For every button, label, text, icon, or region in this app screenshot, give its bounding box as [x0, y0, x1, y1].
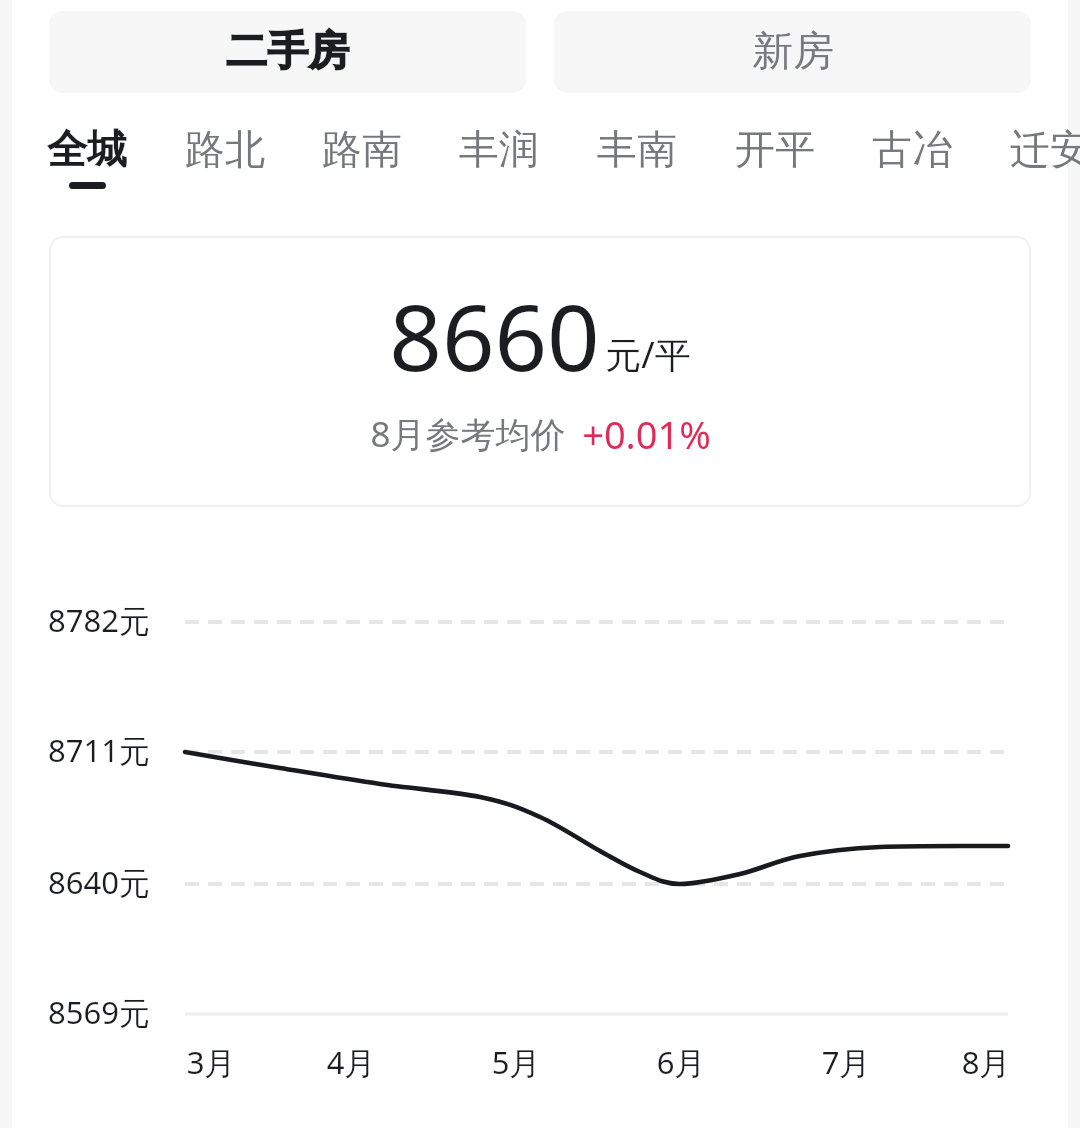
staticText: 8711元: [48, 729, 150, 771]
staticText: 5月: [456, 1041, 576, 1083]
staticText: 全城: [17, 124, 157, 174]
staticText: 6月: [621, 1041, 741, 1083]
staticText: 丰南: [567, 124, 707, 174]
staticText: 8月参考均价: [370, 410, 566, 458]
staticText: 3月: [151, 1041, 271, 1083]
button[interactable]: 迁安: [980, 110, 1080, 200]
staticText: 迁安: [980, 124, 1080, 174]
button[interactable]: 路北: [155, 110, 295, 200]
staticText: 8569元: [48, 991, 150, 1033]
staticText: 7月: [786, 1041, 906, 1083]
button[interactable]: 丰润: [429, 110, 569, 200]
staticText: 8660: [389, 273, 600, 398]
button[interactable]: 丰南: [567, 110, 707, 200]
staticText: 开平: [705, 124, 845, 174]
staticText: 8782元: [48, 599, 150, 641]
staticText: 丰润: [429, 124, 569, 174]
staticText: +0.01%: [582, 408, 711, 460]
staticText: 古冶: [842, 124, 982, 174]
button[interactable]: 8660: [49, 236, 1031, 507]
button[interactable]: 二手房: [49, 11, 526, 93]
staticText: 新房: [752, 26, 834, 78]
staticText: 路南: [292, 124, 432, 174]
staticText: 4月: [291, 1041, 411, 1083]
staticText: 二手房: [226, 26, 349, 78]
button[interactable]: 路南: [292, 110, 432, 200]
button[interactable]: 古冶: [842, 110, 982, 200]
staticText: 8月: [926, 1041, 1046, 1083]
staticText: 路北: [155, 124, 295, 174]
staticText: 元/平: [605, 330, 691, 379]
staticText: 8640元: [48, 861, 150, 903]
button[interactable]: 开平: [705, 110, 845, 200]
button[interactable]: 全城: [17, 110, 157, 200]
button[interactable]: 新房: [554, 11, 1031, 93]
